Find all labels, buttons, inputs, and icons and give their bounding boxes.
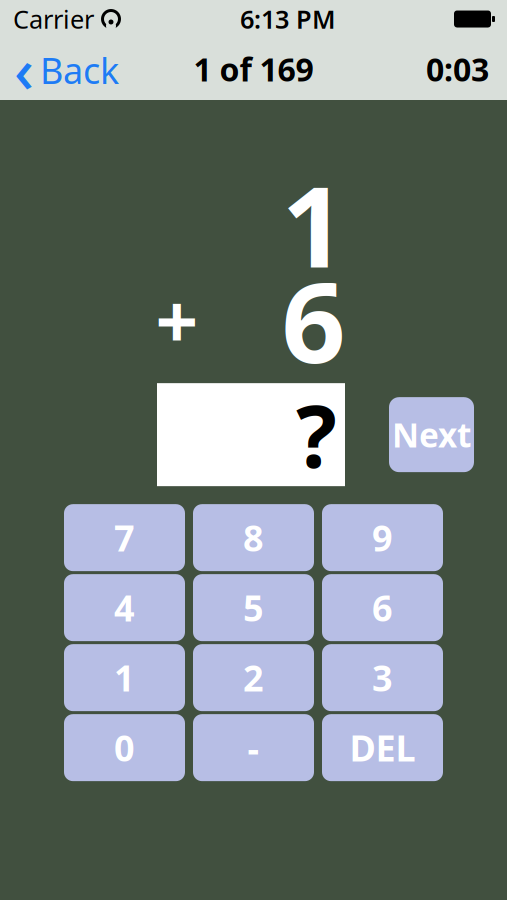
staticText: 8: [243, 514, 264, 562]
button[interactable]: -: [193, 714, 314, 781]
button[interactable]: 5: [193, 574, 314, 641]
button[interactable]: 2: [193, 644, 314, 711]
button[interactable]: Next: [389, 397, 474, 472]
staticText: 5: [243, 584, 264, 632]
button[interactable]: 7: [64, 504, 185, 571]
staticText: 1: [281, 150, 345, 298]
staticText: ?: [296, 378, 337, 491]
staticText: 6:13 PM: [240, 2, 336, 36]
button[interactable]: 6: [322, 574, 443, 641]
staticText: 9: [372, 514, 393, 562]
staticText: Carrier: [13, 2, 94, 36]
staticText: +: [155, 270, 198, 369]
button[interactable]: 4: [64, 574, 185, 641]
staticText: 0:03: [426, 48, 489, 90]
staticText: 6: [281, 245, 345, 394]
staticText: 7: [114, 514, 135, 562]
staticText: 1 of 169: [193, 48, 313, 90]
button[interactable]: 3: [322, 644, 443, 711]
staticText: ‹: [14, 28, 34, 110]
staticText: -: [247, 724, 259, 772]
staticText: 3: [372, 654, 393, 702]
button[interactable]: 1: [64, 644, 185, 711]
button[interactable]: 8: [193, 504, 314, 571]
button[interactable]: ‹: [0, 38, 129, 100]
staticText: 2: [243, 654, 264, 702]
staticText: 1: [114, 654, 135, 702]
staticText: 4: [114, 584, 135, 632]
button[interactable]: DEL: [322, 714, 443, 781]
staticText: 6: [372, 584, 393, 632]
button[interactable]: 0: [64, 714, 185, 781]
staticText: Next: [392, 412, 471, 457]
staticText: 0: [114, 724, 135, 772]
staticText: Back: [40, 46, 119, 94]
staticText: DEL: [349, 724, 415, 772]
button[interactable]: 9: [322, 504, 443, 571]
